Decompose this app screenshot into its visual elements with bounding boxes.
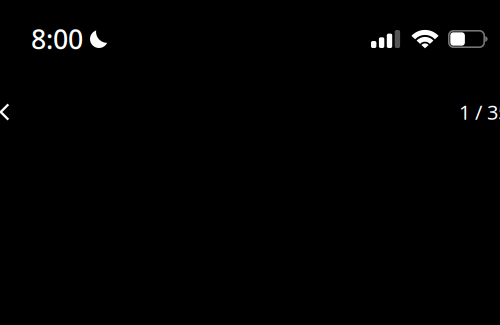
- staticText: 1 / 35: [459, 99, 500, 125]
- button[interactable]: Back: [0, 97, 33, 127]
- staticText: 8:00: [31, 21, 83, 57]
